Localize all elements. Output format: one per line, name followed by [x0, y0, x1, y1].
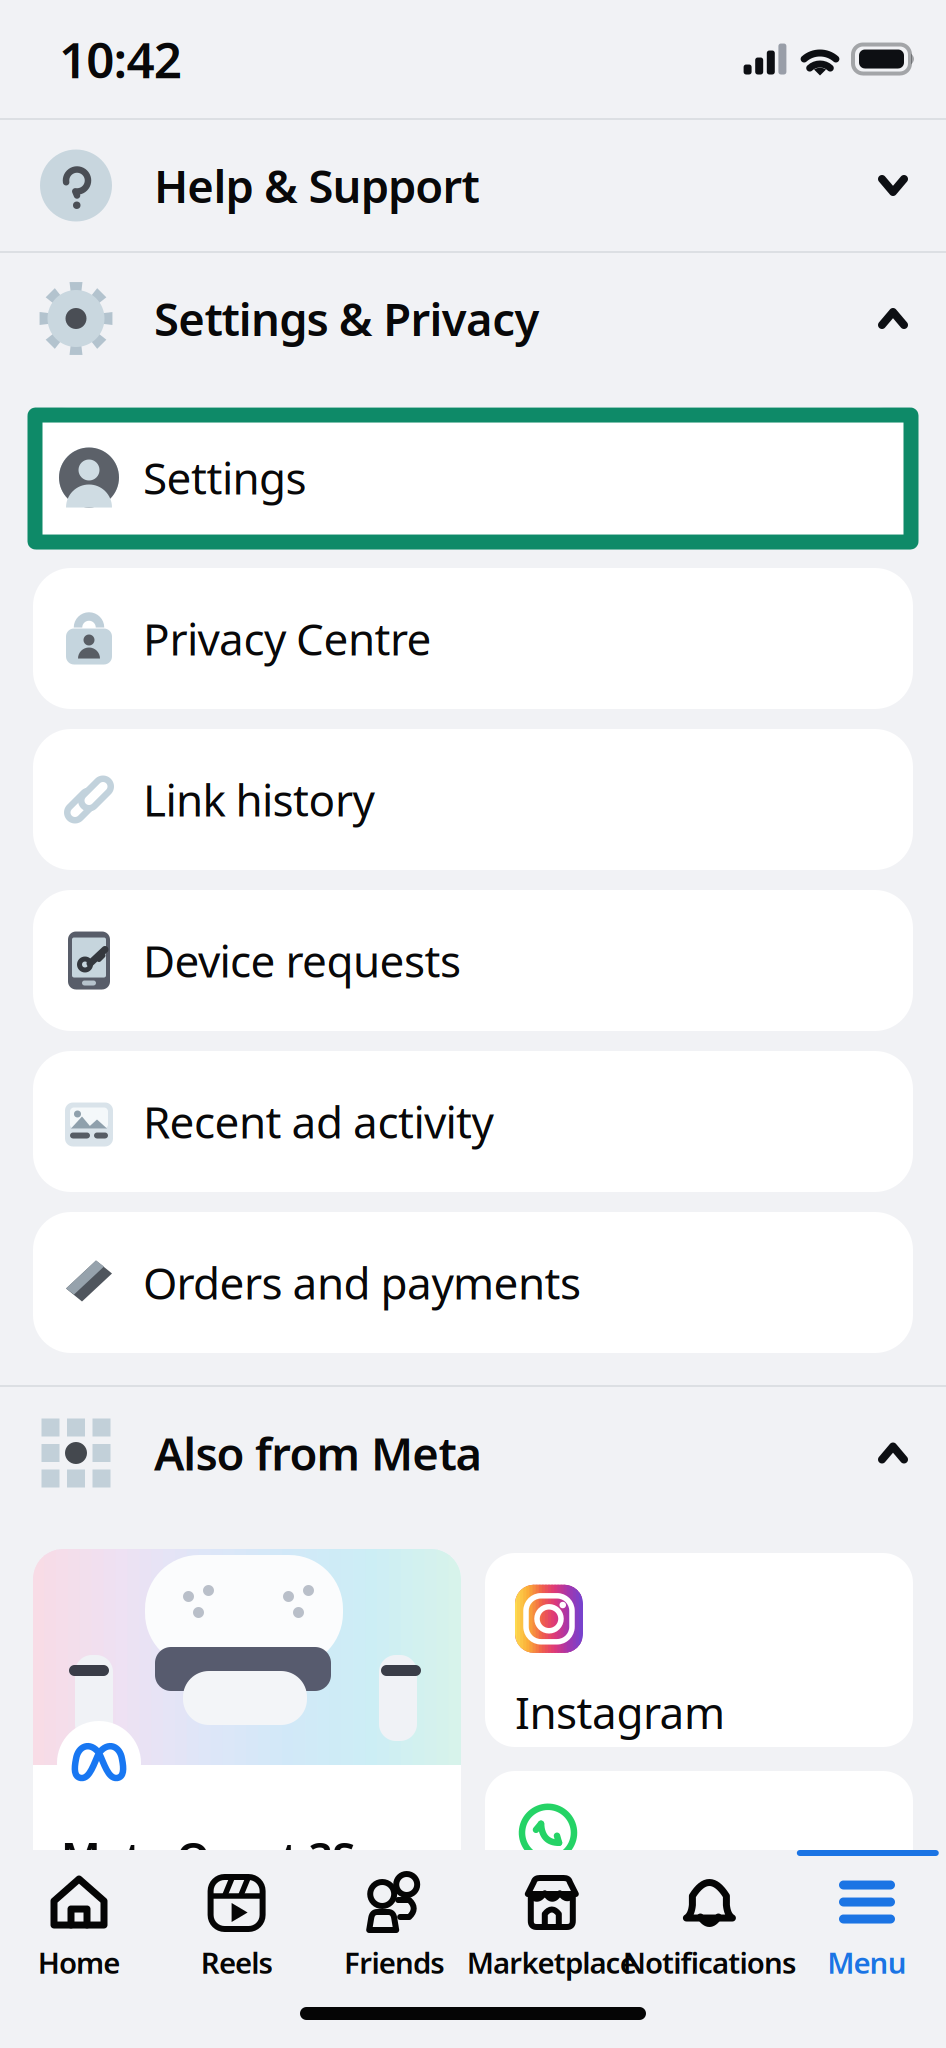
staticText: Device requests — [143, 931, 461, 990]
button[interactable]: Orders and payments — [33, 1212, 913, 1353]
staticText: Settings & Privacy — [154, 288, 539, 349]
staticText: Recent ad activity — [143, 1092, 493, 1151]
staticText: Orders and payments — [143, 1253, 581, 1312]
button[interactable]: WhatsApp — [485, 1771, 913, 1965]
button[interactable]: Meta Quest 3S — [33, 1549, 461, 1969]
staticText: Friends — [344, 1943, 444, 1982]
button[interactable]: Settings — [33, 407, 913, 548]
button[interactable]: Friends — [315, 1849, 473, 1999]
button[interactable]: Reels — [158, 1849, 315, 1999]
button[interactable]: Home — [0, 1849, 158, 1999]
button[interactable]: Settings & Privacy — [0, 253, 946, 384]
staticText: Settings — [143, 448, 306, 507]
staticText: Instagram — [515, 1683, 725, 1741]
button[interactable]: Privacy Centre — [33, 568, 913, 709]
button[interactable]: Menu — [788, 1849, 946, 1999]
staticText: Help & Support — [154, 155, 480, 216]
staticText: Link history — [143, 770, 374, 829]
staticText: Reels — [201, 1943, 272, 1982]
staticText: Marketplace — [467, 1943, 637, 1982]
staticText: 10:42 — [59, 26, 182, 92]
button[interactable]: Link history — [33, 729, 913, 870]
staticText: Meta Quest 3S — [61, 1829, 355, 1886]
staticText: Also from Meta — [154, 1423, 483, 1483]
staticText: Home — [38, 1943, 120, 1982]
button[interactable]: Instagram — [485, 1553, 913, 1747]
button[interactable]: Marketplace — [473, 1849, 631, 1999]
staticText: Privacy Centre — [143, 609, 431, 668]
button[interactable]: Also from Meta — [0, 1387, 946, 1519]
button[interactable]: Recent ad activity — [33, 1051, 913, 1192]
staticText: Notifications — [623, 1943, 796, 1982]
button[interactable]: Device requests — [33, 890, 913, 1031]
staticText: Menu — [827, 1943, 907, 1982]
staticText: WhatsApp — [515, 1901, 723, 1959]
button[interactable]: Help & Support — [0, 120, 946, 251]
button[interactable]: Notifications — [631, 1849, 788, 1999]
